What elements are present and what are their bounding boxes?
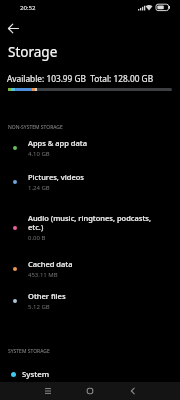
staticText: Storage: [8, 43, 58, 61]
button[interactable]: [76, 382, 104, 400]
staticText: 4.10 GB: [28, 150, 50, 158]
staticText: System: [22, 369, 50, 380]
button[interactable]: [34, 382, 62, 400]
button[interactable]: System: [0, 369, 180, 380]
staticText: 453.11 MB: [28, 271, 58, 279]
button[interactable]: [4, 20, 22, 38]
staticText: 20:52: [20, 4, 36, 12]
button[interactable]: Pictures, videos: [0, 172, 180, 192]
staticText: SYSTEM STORAGE: [8, 348, 50, 355]
button[interactable]: Apps & app data: [0, 138, 180, 158]
button[interactable]: [119, 382, 147, 400]
staticText: Available: 103.99 GB Total: 128.00 GB: [7, 73, 154, 84]
button[interactable]: Audio (music, ringtones, podcasts, etc.): [0, 213, 180, 242]
staticText: Pictures, videos: [28, 172, 84, 182]
staticText: 1.24 GB: [28, 184, 50, 192]
staticText: Audio (music, ringtones, podcasts, etc.): [28, 213, 152, 232]
staticText: Apps & app data: [28, 138, 87, 148]
button[interactable]: Other files: [0, 291, 180, 311]
button[interactable]: Cached data: [0, 259, 180, 279]
staticText: 0.00 B: [28, 234, 46, 242]
staticText: Other files: [28, 291, 66, 301]
staticText: Cached data: [28, 259, 73, 269]
staticText: 5.12 GB: [28, 303, 50, 311]
staticText: NON-SYSTEM STORAGE: [8, 124, 63, 131]
